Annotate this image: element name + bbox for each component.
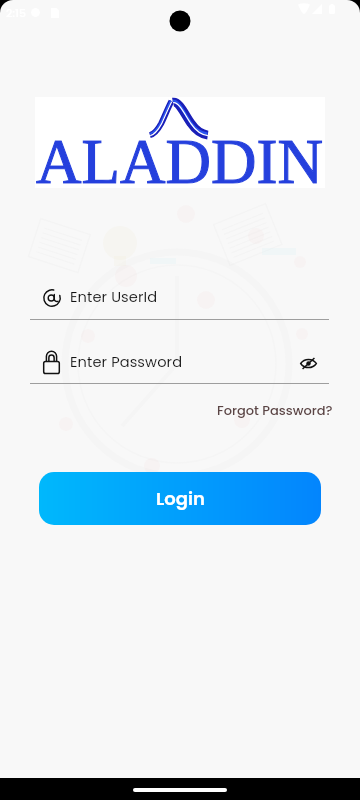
button[interactable]: Login: [39, 472, 321, 525]
staticText: Forgot Password?: [217, 401, 333, 419]
button[interactable]: Show password: [297, 352, 319, 374]
staticText: ALADDIN: [36, 127, 323, 197]
button[interactable]: Forgot Password?: [215, 399, 335, 421]
staticText: Login: [156, 486, 205, 511]
staticText: Enter Password: [70, 352, 183, 372]
staticText: Enter UserId: [70, 287, 158, 307]
staticText: ALADDIN: [36, 127, 323, 197]
